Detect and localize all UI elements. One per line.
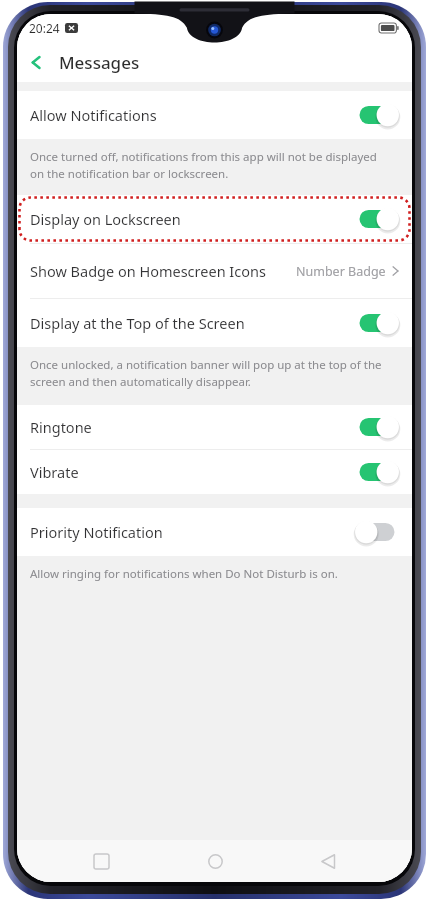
- button[interactable]: On: [354, 206, 400, 232]
- button[interactable]: Vibrate: [17, 450, 412, 494]
- staticText: Number Badge: [296, 263, 386, 280]
- button[interactable]: Priority Notification: [17, 508, 412, 556]
- staticText: 20:24: [29, 20, 60, 36]
- button[interactable]: On: [354, 414, 400, 440]
- button[interactable]: On: [354, 102, 400, 128]
- button[interactable]: Ringtone: [17, 405, 412, 449]
- staticText: Vibrate: [30, 462, 79, 482]
- staticText: Allow Notifications: [30, 105, 157, 125]
- staticText: Display at the Top of the Screen: [30, 313, 245, 333]
- staticText: Once turned off, notifications from this…: [30, 149, 388, 181]
- staticText: Messages: [59, 51, 140, 74]
- staticText: Allow ringing for notifications when Do …: [30, 566, 338, 582]
- button[interactable]: Display on Lockscreen: [17, 195, 412, 243]
- staticText: Once unlocked, a notification banner wil…: [30, 357, 388, 389]
- button[interactable]: Back: [17, 43, 55, 81]
- button[interactable]: Recent apps: [71, 840, 131, 882]
- button[interactable]: On: [354, 459, 400, 485]
- button[interactable]: Display at the Top of the Screen: [17, 299, 412, 347]
- button[interactable]: On: [354, 310, 400, 336]
- button[interactable]: Back: [298, 840, 358, 882]
- button[interactable]: Off: [354, 519, 400, 545]
- staticText: Show Badge on Homescreen Icons: [30, 261, 266, 281]
- button[interactable]: Home: [185, 840, 245, 882]
- button[interactable]: Allow Notifications: [17, 91, 412, 139]
- staticText: Ringtone: [30, 417, 92, 437]
- staticText: Display on Lockscreen: [30, 209, 181, 229]
- staticText: Priority Notification: [30, 522, 163, 542]
- button[interactable]: Show Badge on Homescreen Icons: [17, 244, 412, 298]
